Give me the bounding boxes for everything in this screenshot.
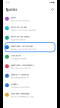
staticText: Funciones avanzadas	[11, 92, 30, 95]
staticText: Seguridad y emergencia	[11, 63, 34, 66]
staticText: Servicios y preferencias	[11, 86, 30, 88]
staticText: Gestos, movimientos, Labs	[11, 95, 34, 98]
staticText: Permisos de cuenta	[11, 35, 30, 38]
staticText: Camara, Microfono, Ubicacion	[11, 29, 36, 31]
staticText: SOS, contactos, alertas	[11, 67, 31, 69]
staticText: Ajustes	[5, 7, 17, 12]
staticText: Seguridad y privacidad	[11, 44, 33, 47]
button[interactable]: Buscar	[50, 7, 54, 11]
button[interactable]: Permisos de cuenta	[3, 33, 57, 42]
staticText: 9:41	[5, 1, 9, 4]
button[interactable]: Google	[3, 80, 57, 90]
staticText: Acceso a tus datos	[11, 38, 26, 41]
button[interactable]: Ubicacion	[3, 52, 57, 61]
button[interactable]: Tema	[3, 14, 57, 23]
button[interactable]: Seguridad y privacidad	[3, 42, 57, 52]
staticText: Google	[11, 82, 18, 85]
button[interactable]: Permisos de app	[3, 23, 57, 33]
staticText: Tema	[11, 16, 16, 19]
staticText: Claro, Oscuro, Sistema	[11, 19, 30, 22]
button[interactable]: Seguridad y emergencia	[3, 61, 57, 71]
staticText: Activada para 5 apps	[11, 57, 27, 60]
staticText: Cuentas y respaldo	[11, 73, 29, 76]
staticText: Permisos de app	[11, 25, 27, 28]
staticText: Ubicacion	[11, 54, 21, 57]
button[interactable]: Cuentas y respaldo	[3, 71, 57, 80]
staticText: Bloqueo, contrasena, permisos	[11, 48, 37, 50]
button[interactable]: Funciones avanzadas	[3, 90, 57, 99]
staticText: Sincronizacion de datos	[11, 76, 29, 79]
